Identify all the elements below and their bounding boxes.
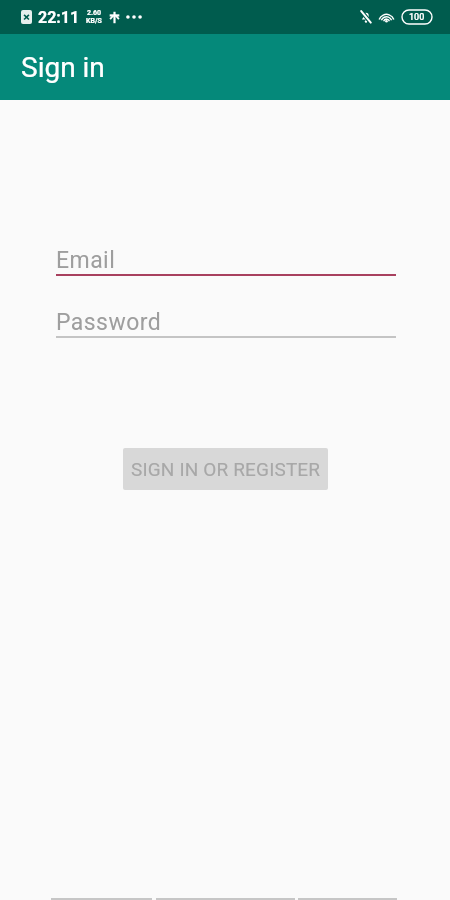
staticText: 22:11 [38,8,80,27]
button[interactable]: Email [56,234,396,276]
staticText: Email [56,247,116,274]
button[interactable]: Password [56,296,396,338]
staticText: SIGN IN OR REGISTER [131,458,321,480]
staticText: Sign in [21,51,105,84]
staticText: KB/S [86,17,102,25]
staticText: 100 [409,12,425,23]
staticText: 2.60 [87,9,102,17]
staticText: Password [56,309,162,336]
button[interactable]: SIGN IN OR REGISTER [123,448,328,490]
